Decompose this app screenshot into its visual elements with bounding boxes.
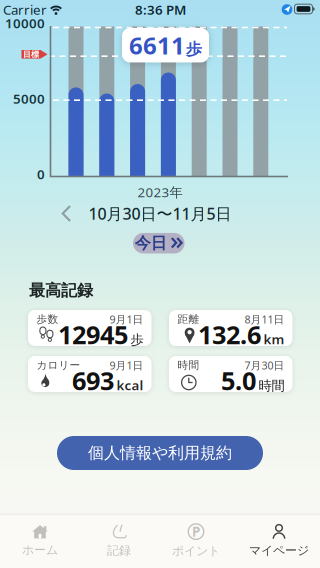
button[interactable]: マイページ [237,516,320,566]
staticText: 時間 [177,359,199,372]
staticText: 目標 [23,49,39,59]
staticText: 歩数 [36,313,58,326]
button[interactable]: ホーム [0,516,80,566]
staticText: P [192,523,200,540]
staticText: 今日 [135,233,167,253]
staticText: 8:36 PM [135,1,186,18]
staticText: 9月1日 [109,358,143,372]
staticText: 最高記録 [29,281,93,300]
staticText: マイページ [249,543,309,558]
staticText: 12945 [58,318,128,351]
button[interactable]: P [156,516,236,566]
staticText: ホーム [22,543,58,557]
staticText: 記録 [107,543,131,558]
button[interactable]: 記録 [79,516,159,566]
staticText: 8月11日 [244,312,284,326]
staticText: 132.6 [198,318,261,351]
staticText: 歩 [130,332,143,348]
staticText: 693 [72,364,114,397]
staticText: 5000 [13,90,45,107]
staticText: 9月1日 [109,312,143,326]
staticText: km [263,330,284,348]
staticText: 10月30日〜11月5日 [88,203,231,224]
staticText: 0 [37,165,45,183]
staticText: Carrier [3,1,47,18]
staticText: kcal [116,376,143,394]
staticText: 距離 [177,313,199,326]
staticText: 個人情報や利用規約 [88,443,232,463]
staticText: 10000 [5,14,45,32]
staticText: 歩 [186,39,202,59]
staticText: カロリー [36,359,80,372]
staticText: 2023年 [137,183,182,201]
button[interactable]: 個人情報や利用規約 [57,436,263,470]
button[interactable]: 前の週 [55,199,77,228]
staticText: 7月30日 [244,358,284,372]
button[interactable]: 今日 [133,233,185,253]
staticText: 5.0 [221,364,256,397]
staticText: 時間 [258,378,284,394]
staticText: ポイント [172,544,220,558]
staticText: 6611 [129,29,185,61]
